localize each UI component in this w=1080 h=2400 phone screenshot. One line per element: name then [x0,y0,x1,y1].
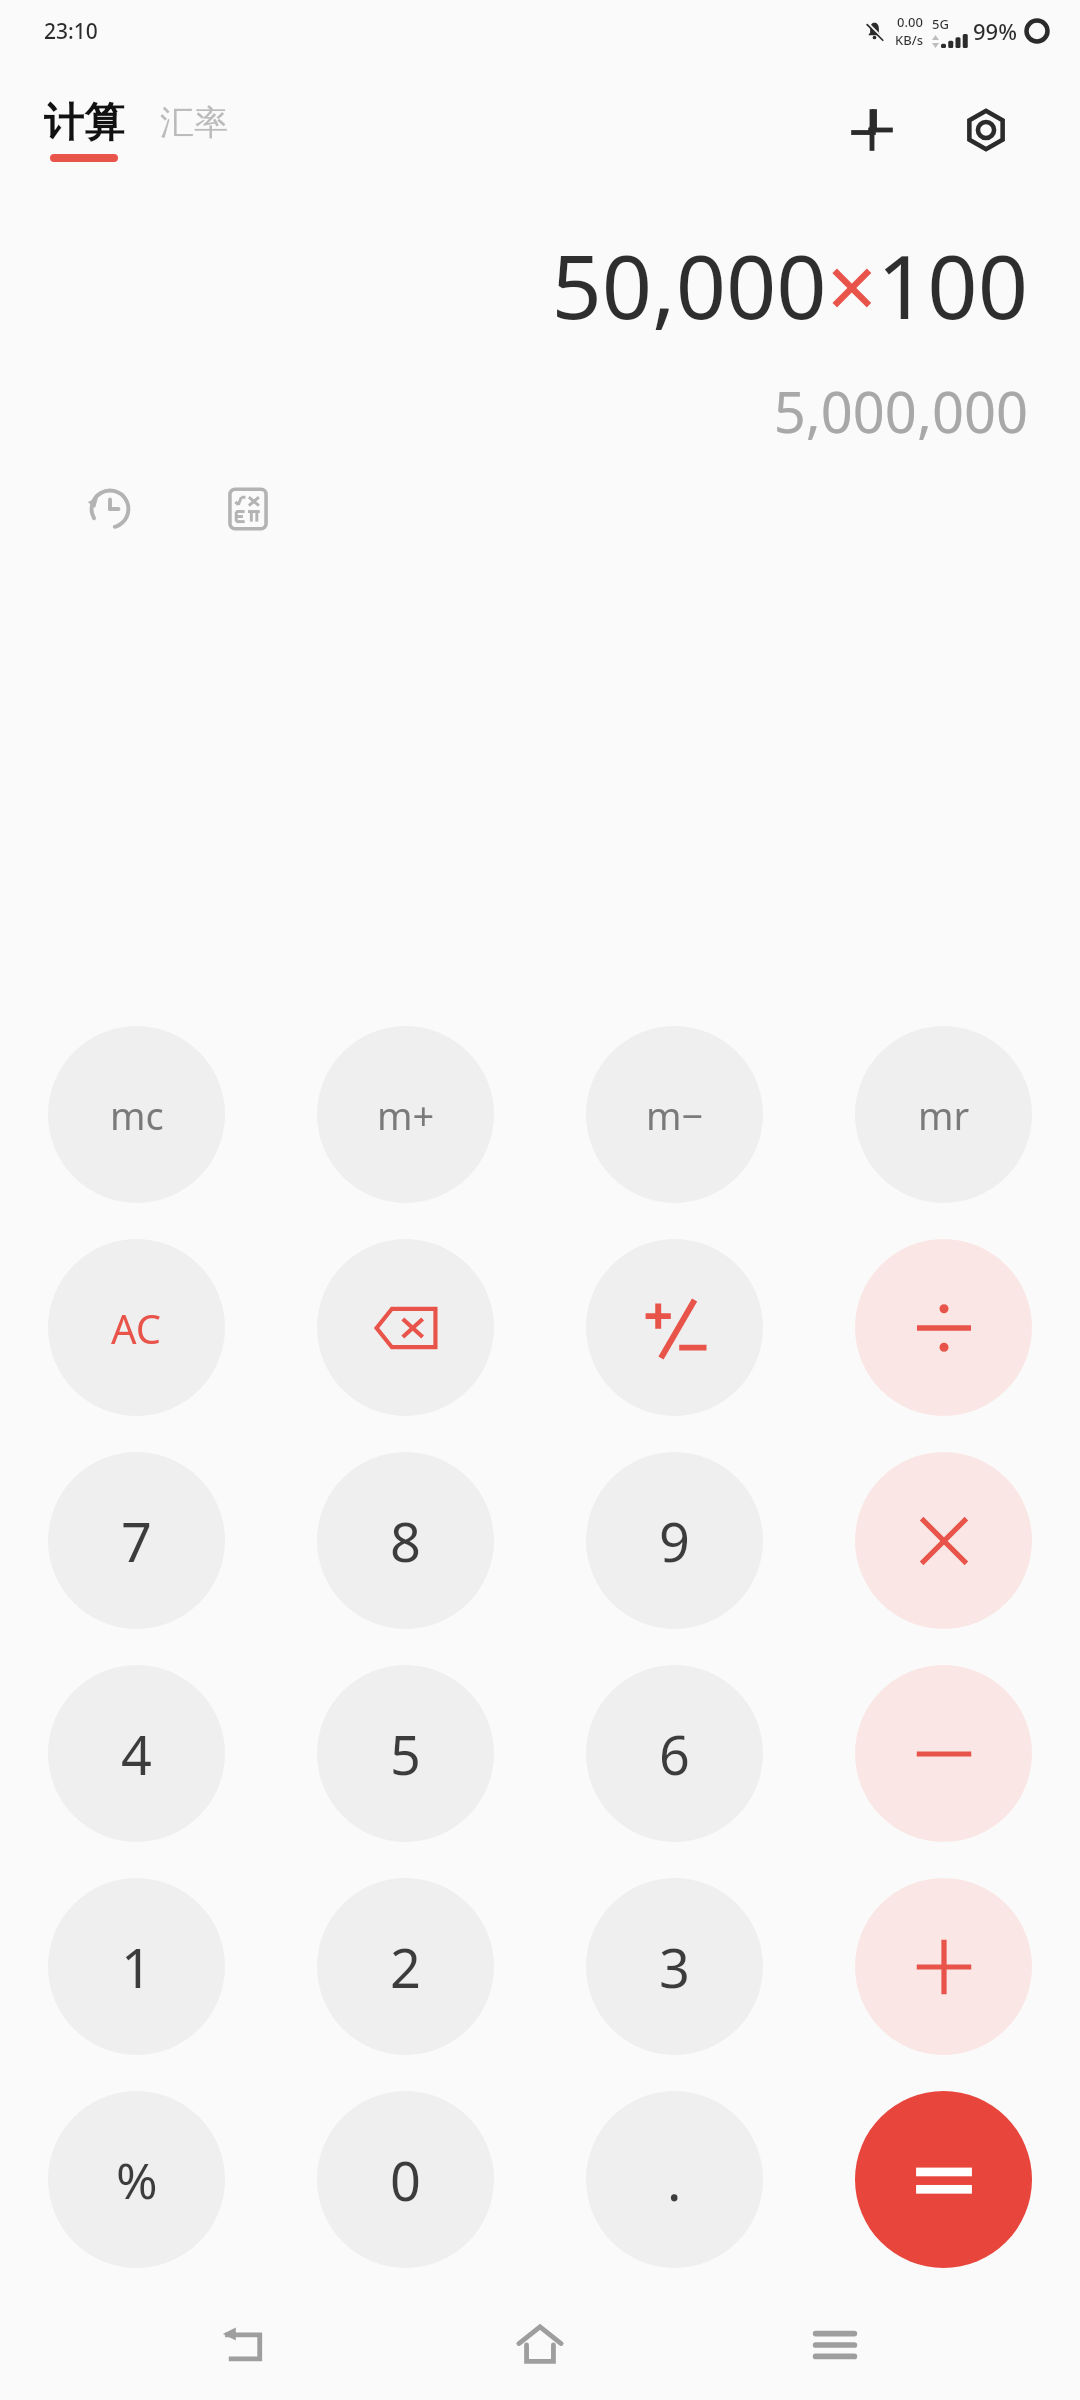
button[interactable]: 计算 [44,97,124,162]
button[interactable]: m+ [317,1026,494,1203]
button[interactable]: Backspace [317,1239,494,1416]
staticText: m+ [377,1089,435,1141]
button[interactable]: mc [48,1026,225,1203]
button[interactable]: 1 [48,1878,225,2055]
button[interactable]: 2 [317,1878,494,2055]
staticText: 计算 [44,97,124,147]
staticText: 2 [390,1930,421,2004]
staticText: 汇率 [160,101,228,144]
button[interactable]: 0 [317,2091,494,2268]
button[interactable]: Settings [944,88,1028,172]
button[interactable]: Scientific [216,477,280,541]
button[interactable]: 6 [586,1665,763,1842]
button[interactable] [855,1452,1032,1629]
staticText: 99% [973,16,1017,46]
staticText: 1 [121,1930,152,2004]
staticText: 5 [390,1717,421,1791]
button[interactable]: 5 [317,1665,494,1842]
staticText: mr [918,1089,970,1141]
button[interactable]: 7 [48,1452,225,1629]
button[interactable]: . [586,2091,763,2268]
staticText: m− [646,1089,704,1141]
button[interactable]: 4 [48,1665,225,1842]
button[interactable]: Themes [830,88,914,172]
button[interactable]: mr [855,1026,1032,1203]
button[interactable]: 8 [317,1452,494,1629]
button[interactable]: History [78,477,142,541]
button[interactable]: Recents [785,2295,885,2395]
staticText: . [667,2143,682,2217]
button[interactable]: Equals [855,2091,1032,2268]
button[interactable]: m− [586,1026,763,1203]
staticText: KB/s [895,31,924,49]
staticText: 5,000,000 [52,373,1028,449]
staticText: 23:10 [44,17,98,46]
staticText: 7 [121,1504,152,1578]
button[interactable]: 9 [586,1452,763,1629]
button[interactable]: 汇率 [160,101,228,159]
button[interactable]: AC [48,1239,225,1416]
button[interactable]: Back [195,2295,295,2395]
staticText: 5G [932,15,949,33]
staticText: 8 [390,1504,421,1578]
staticText: % [116,2146,158,2214]
staticText: mc [110,1089,164,1141]
button[interactable]: Home [490,2295,590,2395]
staticText: 9 [659,1504,690,1578]
staticText: 50,000×100 [52,225,1028,345]
staticText: 4 [121,1717,152,1791]
button[interactable] [855,1665,1032,1842]
staticText: 6 [659,1717,690,1791]
button[interactable] [855,1878,1032,2055]
button[interactable]: Plus minus [586,1239,763,1416]
staticText: 3 [659,1930,690,2004]
staticText: 0.00 [897,13,923,31]
button[interactable]: % [48,2091,225,2268]
staticText: 0 [390,2143,421,2217]
staticText: AC [111,1301,162,1355]
button[interactable] [855,1239,1032,1416]
button[interactable]: 3 [586,1878,763,2055]
